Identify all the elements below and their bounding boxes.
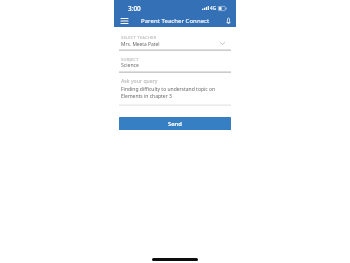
button[interactable]: SUBJECT [114,54,236,73]
button[interactable]: Ask your query [114,75,236,107]
staticText: Parent Teacher Connect [141,17,210,25]
staticText: 4G [210,5,216,11]
staticText: 3:00 [128,4,141,13]
staticText: SUBJECT [121,57,139,63]
button[interactable]: Open navigation menu [117,14,131,28]
staticText: Ask your query [121,77,158,84]
button[interactable]: Send [119,117,231,130]
button[interactable]: Notifications [221,14,235,28]
staticText: Science [121,62,139,69]
staticText: Mrs. Meeta Patel [121,41,160,48]
staticText: SELECT TEACHER [121,35,157,41]
button[interactable]: SELECT TEACHER [114,32,236,51]
staticText: Send [168,120,182,128]
staticText: Finding difficulty to understand topic o… [121,86,225,100]
